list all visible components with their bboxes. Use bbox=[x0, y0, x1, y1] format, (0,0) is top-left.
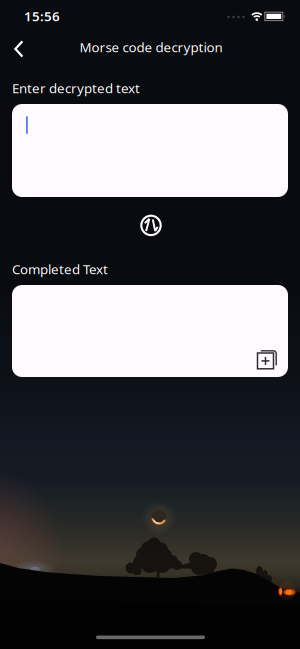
button[interactable]: Swap conversion direction bbox=[133, 207, 169, 243]
staticText: Enter decrypted text bbox=[12, 79, 140, 97]
button[interactable]: Back bbox=[8, 31, 36, 67]
staticText: 15:56 bbox=[24, 7, 60, 25]
staticText: Morse code decryption bbox=[79, 38, 222, 56]
staticText: Completed Text bbox=[12, 260, 108, 278]
button[interactable]: Copy bbox=[250, 343, 282, 375]
